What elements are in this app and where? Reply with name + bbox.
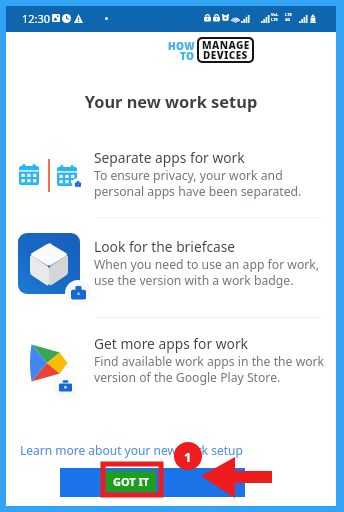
staticText: Separate apps for work — [94, 148, 245, 167]
button[interactable]: Learn more about your new work setup — [20, 442, 243, 458]
staticText: Your new work setup — [6, 90, 336, 112]
button[interactable]: GOT IT — [106, 471, 156, 492]
staticText: 12:30 — [22, 11, 51, 26]
staticText: Look for the briefcase — [94, 237, 236, 256]
staticText: TO — [180, 49, 195, 63]
staticText: To ensure privacy, your work and persona… — [94, 167, 302, 199]
staticText: Get more apps for work — [94, 334, 248, 353]
staticText: VoL LTE — [271, 12, 279, 22]
staticText: Find available work apps in the the work… — [94, 353, 325, 385]
staticText: MANAGE — [202, 39, 250, 52]
staticText: HOW — [168, 39, 195, 53]
staticText: GOT IT — [113, 474, 150, 489]
staticText: DEVICES — [203, 48, 248, 61]
staticText: 1 — [184, 448, 192, 466]
staticText: When you need to use an app for work, us… — [94, 256, 320, 288]
staticText: LTE 4G — [285, 12, 292, 22]
